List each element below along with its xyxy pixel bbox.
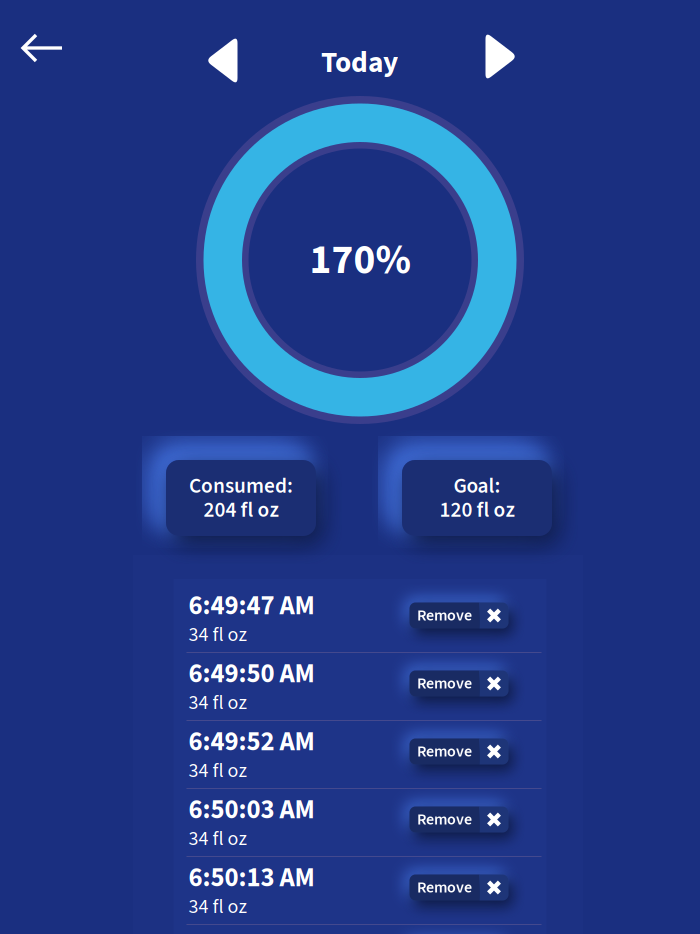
staticText: Today (321, 42, 398, 84)
staticText: 6:49:52 AM (188, 723, 314, 761)
button[interactable]: Consumed: (166, 460, 316, 536)
button[interactable]: Back (20, 26, 65, 70)
staticText: Remove (417, 740, 472, 763)
button[interactable]: Remove (409, 874, 508, 906)
button[interactable]: Remove (409, 738, 508, 770)
button[interactable]: Previous day (205, 36, 239, 86)
button[interactable]: Remove (409, 670, 508, 702)
staticText: Consumed: (189, 471, 293, 501)
button[interactable]: Today (321, 42, 398, 84)
button[interactable]: Next day (485, 32, 519, 82)
staticText: 34 fl oz (188, 688, 247, 717)
staticText: 6:49:50 AM (188, 655, 314, 693)
staticText: 34 fl oz (188, 824, 247, 853)
button[interactable]: Remove (409, 602, 508, 634)
staticText: 120 fl oz (439, 495, 514, 525)
staticText: Goal: (453, 471, 500, 501)
staticText: 34 fl oz (188, 756, 247, 785)
staticText: 170% (309, 231, 410, 289)
staticText: 204 fl oz (203, 495, 278, 525)
staticText: Remove (417, 808, 472, 831)
staticText: 6:50:13 AM (188, 859, 314, 897)
staticText: 34 fl oz (188, 892, 247, 921)
button[interactable]: Goal: (402, 460, 552, 536)
staticText: 6:50:03 AM (188, 791, 314, 829)
staticText: 6:49:47 AM (188, 587, 314, 625)
button[interactable]: Remove (409, 806, 508, 838)
staticText: 34 fl oz (188, 620, 247, 649)
staticText: Remove (417, 604, 472, 627)
staticText: Remove (417, 876, 472, 899)
staticText: Remove (417, 672, 472, 695)
